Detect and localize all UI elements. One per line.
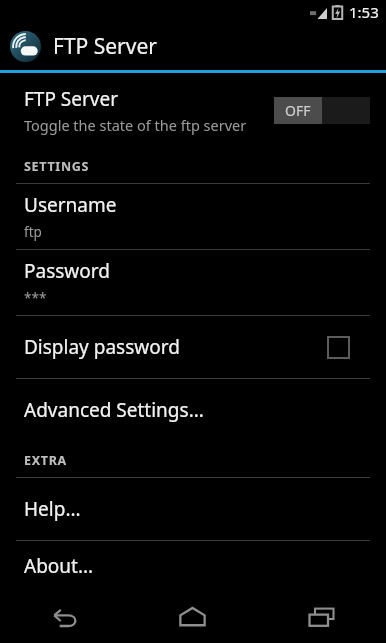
button[interactable]: Username — [0, 184, 386, 249]
staticText: 1:53 — [349, 2, 379, 22]
staticText: FTP Server — [53, 32, 157, 61]
staticText: ftp — [24, 223, 42, 241]
staticText: OFF — [285, 101, 311, 120]
staticText: Help... — [24, 496, 81, 522]
staticText: Advanced Settings... — [24, 397, 204, 423]
button[interactable]: Toggle FTP server, off — [274, 97, 370, 124]
button[interactable]: Home — [128, 590, 257, 643]
button[interactable]: Back — [0, 590, 128, 643]
staticText: EXTRA — [24, 452, 67, 469]
button[interactable]: Advanced Settings... — [0, 379, 386, 441]
button[interactable]: Display password — [0, 316, 386, 378]
staticText: Username — [24, 192, 117, 218]
staticText: About... — [24, 553, 94, 579]
staticText: Display password — [24, 334, 180, 360]
button[interactable]: Password — [0, 250, 386, 315]
staticText: SETTINGS — [24, 158, 90, 175]
button[interactable]: About... — [0, 541, 386, 590]
staticText: Toggle the state of the ftp server — [24, 115, 247, 135]
button[interactable]: Help... — [0, 478, 386, 540]
staticText: FTP Server — [24, 86, 119, 112]
button[interactable]: FTP Server — [0, 73, 386, 147]
staticText: Password — [24, 258, 110, 284]
staticText: *** — [24, 289, 47, 307]
button[interactable]: Recent apps — [257, 590, 386, 643]
